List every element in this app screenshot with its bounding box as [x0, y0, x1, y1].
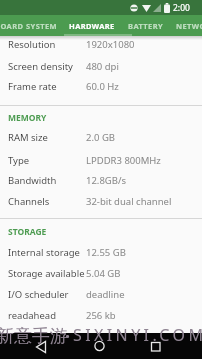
staticText: MEMORY [8, 112, 47, 124]
staticText: Type [8, 154, 30, 167]
button[interactable]: Storage available [0, 264, 202, 283]
staticText: 新意手游 [0, 325, 68, 348]
staticText: · [65, 324, 71, 349]
button[interactable]: Internal storage [0, 243, 202, 262]
staticText: 5.04 GB [86, 267, 121, 280]
button[interactable]: BOARD [0, 15, 24, 36]
button[interactable]: Bandwidth [0, 171, 202, 190]
button[interactable] [80, 333, 120, 359]
staticText: SYSTEM [26, 21, 57, 31]
staticText: 12.55 GB [86, 246, 126, 259]
staticText: readahead [8, 309, 56, 322]
button[interactable]: HARDWARE [69, 15, 115, 36]
staticText: BATTERY [128, 21, 164, 31]
staticText: 60.0 Hz [86, 80, 119, 93]
staticText: 32-bit dual channel [86, 195, 172, 208]
button[interactable]: NETWORK [176, 15, 202, 36]
staticText: Resolution [8, 38, 56, 51]
button[interactable]: Type [0, 151, 202, 170]
staticText: Storage available [8, 267, 85, 280]
staticText: deadline [86, 288, 125, 301]
staticText: RAM size [8, 131, 48, 144]
staticText: 12.8GB/s [86, 174, 127, 187]
staticText: Bandwidth [8, 174, 57, 187]
staticText: Screen density [8, 60, 73, 73]
staticText: Frame rate [8, 80, 57, 93]
button[interactable]: RAM size [0, 128, 202, 147]
staticText: 480 dpi [86, 60, 119, 73]
staticText: HARDWARE [69, 21, 115, 31]
button[interactable]: Channels [0, 192, 202, 211]
staticText: LPDDR3 800MHz [86, 154, 161, 167]
button[interactable]: BATTERY [128, 15, 164, 36]
button[interactable]: Screen density [0, 57, 202, 76]
button[interactable]: readahead [0, 306, 202, 325]
staticText: 1920x1080 [86, 38, 135, 51]
staticText: Channels [8, 195, 50, 208]
staticText: 2.0 GB [86, 131, 115, 144]
staticText: I/O scheduler [8, 288, 69, 301]
staticText: 2:00 [173, 2, 190, 14]
staticText: NETWORK [176, 21, 202, 31]
button[interactable] [136, 333, 176, 359]
button[interactable]: I/O scheduler [0, 285, 202, 304]
staticText: 256 kb [86, 309, 116, 322]
staticText: Internal storage [8, 246, 80, 259]
button[interactable]: SYSTEM [26, 15, 57, 36]
staticText: BOARD [0, 21, 24, 31]
button[interactable] [21, 333, 61, 359]
staticText: SIXINYI.COM [73, 324, 202, 346]
button[interactable]: Resolution [0, 35, 202, 54]
staticText: STORAGE [8, 226, 47, 238]
button[interactable]: Frame rate [0, 77, 202, 96]
